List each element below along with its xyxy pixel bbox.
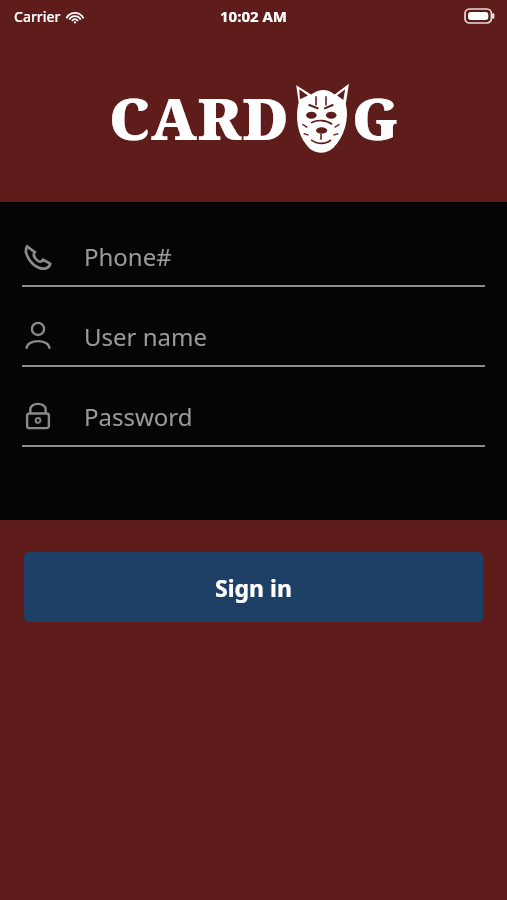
staticText: User name xyxy=(84,320,207,353)
staticText: Carrier xyxy=(14,7,61,26)
staticText: Phone# xyxy=(84,240,172,273)
staticText: 10:02 AM xyxy=(220,6,287,26)
button[interactable]: Password xyxy=(0,387,507,467)
button[interactable]: Phone# xyxy=(0,227,507,307)
button[interactable]: Sign in xyxy=(24,552,483,622)
button[interactable]: User name xyxy=(0,307,507,387)
staticText: G xyxy=(352,78,399,157)
staticText: Sign in xyxy=(215,572,292,603)
staticText: Password xyxy=(84,400,193,433)
staticText: CARD xyxy=(109,78,290,157)
